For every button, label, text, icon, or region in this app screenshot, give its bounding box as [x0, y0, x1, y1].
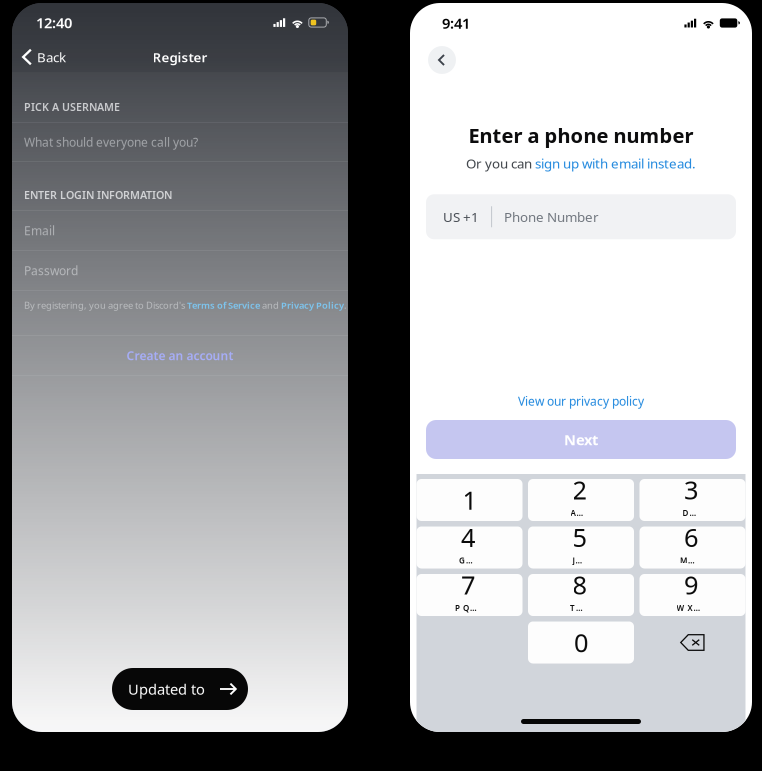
button[interactable]: 8	[528, 574, 634, 616]
button[interactable]: What should everyone call you?	[12, 123, 348, 162]
staticText: Next	[564, 430, 598, 449]
staticText: 9:41	[442, 13, 470, 33]
button[interactable]: Updated to	[112, 668, 248, 710]
staticText: sign up with email instead.	[535, 155, 696, 172]
staticText: Password	[24, 262, 78, 278]
staticText: GHI	[459, 555, 477, 566]
staticText: 9	[684, 568, 698, 601]
button[interactable]: Back	[12, 41, 74, 73]
button[interactable]: Password	[12, 251, 348, 291]
button[interactable]: Delete	[639, 621, 745, 663]
staticText: Enter a phone number	[468, 122, 693, 149]
staticText: PICK A USERNAME	[24, 100, 120, 114]
button[interactable]: 7	[416, 574, 522, 616]
button[interactable]: Next	[410, 420, 752, 459]
staticText: 5	[572, 520, 586, 554]
staticText: ENTER LOGIN INFORMATION	[24, 188, 172, 202]
staticText: 2	[572, 473, 586, 506]
staticText: PQRS	[455, 602, 481, 613]
staticText: 1	[462, 483, 476, 517]
staticText: TUV	[570, 602, 589, 613]
staticText: MNO	[680, 555, 702, 566]
staticText: View our privacy policy	[518, 393, 644, 409]
button[interactable]: 4	[416, 526, 522, 568]
staticText: 8	[572, 568, 586, 601]
staticText: Updated to	[128, 679, 205, 699]
button[interactable]: 9	[639, 574, 745, 616]
staticText: 4	[461, 520, 475, 554]
staticText: Email	[24, 222, 55, 238]
staticText: Phone Number	[504, 208, 599, 226]
staticText: By registering, you agree to Discord's T…	[24, 299, 347, 311]
staticText: What should everyone call you?	[24, 134, 198, 150]
button[interactable]: View our privacy policy	[518, 388, 644, 414]
button[interactable]: 5	[528, 526, 634, 568]
staticText: 6	[684, 520, 698, 554]
button[interactable]: sign up with email instead.	[535, 155, 696, 172]
staticText: 12:40	[36, 13, 72, 32]
button[interactable]: 3	[639, 479, 745, 521]
staticText: 7	[461, 568, 475, 601]
button[interactable]: 1	[416, 479, 522, 521]
button[interactable]: 6	[639, 526, 745, 568]
button[interactable]: Back	[428, 46, 456, 74]
button[interactable]: 2	[528, 479, 634, 521]
staticText: JKL	[572, 555, 586, 566]
staticText: DEF	[682, 507, 699, 518]
staticText: Back	[37, 48, 66, 66]
staticText: 0	[574, 626, 588, 659]
staticText: Or you can	[466, 155, 535, 172]
staticText: Create an account	[126, 347, 233, 363]
button[interactable]: 0	[528, 621, 634, 663]
staticText: 3	[684, 473, 698, 506]
button[interactable]: Create an account	[12, 336, 348, 376]
button[interactable]: Email	[12, 211, 348, 251]
staticText: ABC	[570, 507, 588, 518]
staticText: WXYZ	[676, 602, 705, 613]
staticText: US +1	[443, 208, 479, 226]
staticText: Register	[152, 48, 207, 66]
